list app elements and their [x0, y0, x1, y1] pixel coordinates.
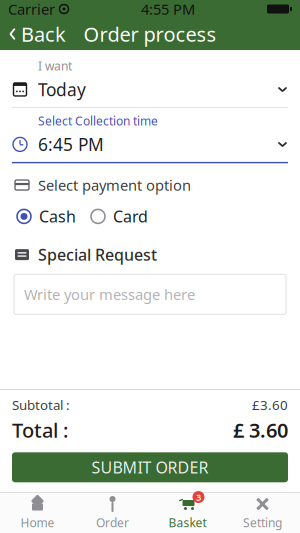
button[interactable]: Back: [0, 18, 74, 50]
staticText: 6:45 PM: [38, 133, 104, 156]
button[interactable]: SUBMIT ORDER: [12, 452, 288, 482]
button[interactable]: I want: [0, 58, 300, 108]
button[interactable]: Write your message here: [14, 274, 286, 314]
staticText: Select payment option: [38, 175, 191, 195]
staticText: Basket: [168, 514, 206, 530]
staticText: Carrier: [8, 0, 55, 19]
staticText: Card: [113, 206, 148, 227]
button[interactable]: Order: [75, 493, 150, 533]
staticText: Order process: [83, 21, 216, 47]
staticText: 3: [196, 491, 201, 503]
staticText: Select Collection time: [38, 113, 158, 129]
staticText: £3.60: [252, 396, 288, 414]
staticText: Setting: [243, 514, 282, 530]
button[interactable]: Setting: [225, 493, 300, 533]
button[interactable]: Home: [0, 493, 75, 533]
staticText: Write your message here: [24, 284, 195, 304]
staticText: SUBMIT ORDER: [91, 457, 208, 478]
staticText: I want: [38, 58, 72, 74]
button[interactable]: Select Collection time: [0, 108, 300, 163]
staticText: Special Request: [38, 244, 157, 265]
staticText: Total :: [12, 417, 68, 443]
staticText: Today: [38, 78, 86, 101]
staticText: 4:55 PM: [141, 0, 195, 19]
button[interactable]: 3: [150, 493, 225, 533]
button[interactable]: Card: [90, 202, 148, 231]
staticText: Cash: [39, 206, 76, 227]
staticText: Order: [96, 514, 129, 530]
staticText: Back: [21, 21, 66, 47]
staticText: Home: [20, 514, 54, 530]
staticText: Subtotal :: [12, 396, 70, 414]
button[interactable]: Cash: [16, 202, 76, 231]
staticText: £ 3.60: [233, 417, 288, 443]
